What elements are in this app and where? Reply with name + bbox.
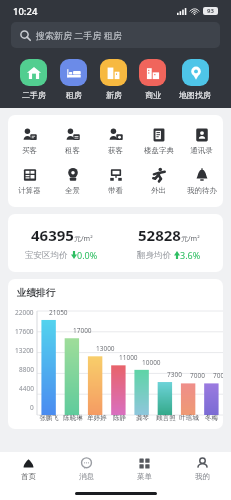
staticText: 我的 [195, 472, 210, 481]
button[interactable]: 租房 [59, 59, 88, 100]
staticText: 0.0% [77, 249, 98, 261]
staticText: 元/m² [74, 234, 93, 244]
staticText: 52828 [138, 225, 181, 245]
staticText: 菜单 [137, 472, 152, 481]
staticText: 11000 [119, 353, 138, 362]
staticText: 7000 [190, 371, 205, 380]
staticText: 93 [207, 7, 214, 15]
staticText: 搜索新房 二手房 租房 [36, 29, 122, 41]
staticText: 地图找房 [179, 90, 211, 100]
staticText: 外出 [151, 186, 166, 195]
staticText: 10000 [142, 358, 161, 367]
staticText: 龚琴 [136, 414, 149, 422]
staticText: 0 [30, 403, 34, 412]
staticText: 陈晓琳 [63, 414, 83, 422]
staticText: 计算器 [18, 186, 41, 195]
staticText: 13200 [15, 346, 34, 355]
staticText: 首页 [21, 472, 36, 481]
staticText: 消息 [79, 472, 94, 481]
staticText: 宝安区均价 [25, 250, 68, 261]
button[interactable]: 我的待办 [180, 164, 223, 198]
staticText: 7000 [213, 371, 223, 380]
button[interactable]: 搜索新房 二手房 租房 [11, 22, 220, 48]
button[interactable]: 计算器 [8, 164, 51, 198]
staticText: 46395 [31, 225, 74, 245]
button[interactable]: 租客 [51, 124, 94, 158]
button[interactable]: 全景 [51, 164, 94, 198]
staticText: 带看 [108, 186, 123, 195]
staticText: 17600 [15, 327, 34, 336]
staticText: 13000 [96, 344, 115, 353]
staticText: 元/m² [181, 234, 200, 244]
staticText: 全景 [65, 186, 80, 195]
button[interactable]: 消息 [57, 452, 115, 486]
staticText: 冬梅 [205, 414, 218, 422]
staticText: 22000 [15, 308, 34, 317]
staticText: 通讯录 [190, 146, 213, 155]
staticText: 二手房 [22, 90, 46, 100]
button[interactable]: 外出 [137, 164, 180, 198]
staticText: 10:24 [13, 5, 38, 18]
staticText: 租房 [66, 90, 82, 100]
button[interactable]: 商业 [138, 59, 167, 100]
button[interactable]: 菜单 [115, 452, 173, 486]
staticText: 叶瑶城 [179, 414, 199, 422]
staticText: 楼盘字典 [144, 146, 174, 155]
button[interactable]: 52828 [115, 225, 223, 261]
staticText: 我的待办 [187, 186, 217, 195]
button[interactable]: 地图找房 [178, 59, 212, 100]
staticText: 顾言照 [156, 414, 176, 422]
staticText: 业绩排行 [17, 287, 55, 299]
button[interactable]: 买客 [8, 124, 51, 158]
staticText: 牟婷婷 [87, 414, 107, 422]
staticText: 新房 [106, 90, 122, 100]
staticText: 17000 [73, 326, 92, 335]
button[interactable]: 46395 [8, 225, 115, 261]
staticText: 7300 [167, 370, 182, 379]
staticText: 3.6% [180, 249, 201, 261]
staticText: 8800 [19, 365, 34, 374]
button[interactable]: 楼盘字典 [137, 124, 180, 158]
button[interactable]: 新房 [99, 59, 128, 100]
staticText: 陈静 [113, 414, 126, 422]
button[interactable]: 带看 [94, 164, 137, 198]
staticText: 获客 [108, 146, 123, 155]
staticText: 翻身均价 [137, 250, 171, 261]
staticText: 租客 [65, 146, 80, 155]
button[interactable]: 首页 [0, 452, 57, 486]
staticText: 买客 [22, 146, 37, 155]
staticText: 张鹏飞 [39, 414, 59, 422]
staticText: 4400 [19, 384, 34, 393]
button[interactable]: 通讯录 [180, 124, 223, 158]
button[interactable]: 二手房 [19, 59, 48, 100]
button[interactable]: 我的 [173, 452, 231, 486]
staticText: 21050 [49, 308, 68, 317]
button[interactable]: 获客 [94, 124, 137, 158]
staticText: 商业 [145, 90, 161, 100]
